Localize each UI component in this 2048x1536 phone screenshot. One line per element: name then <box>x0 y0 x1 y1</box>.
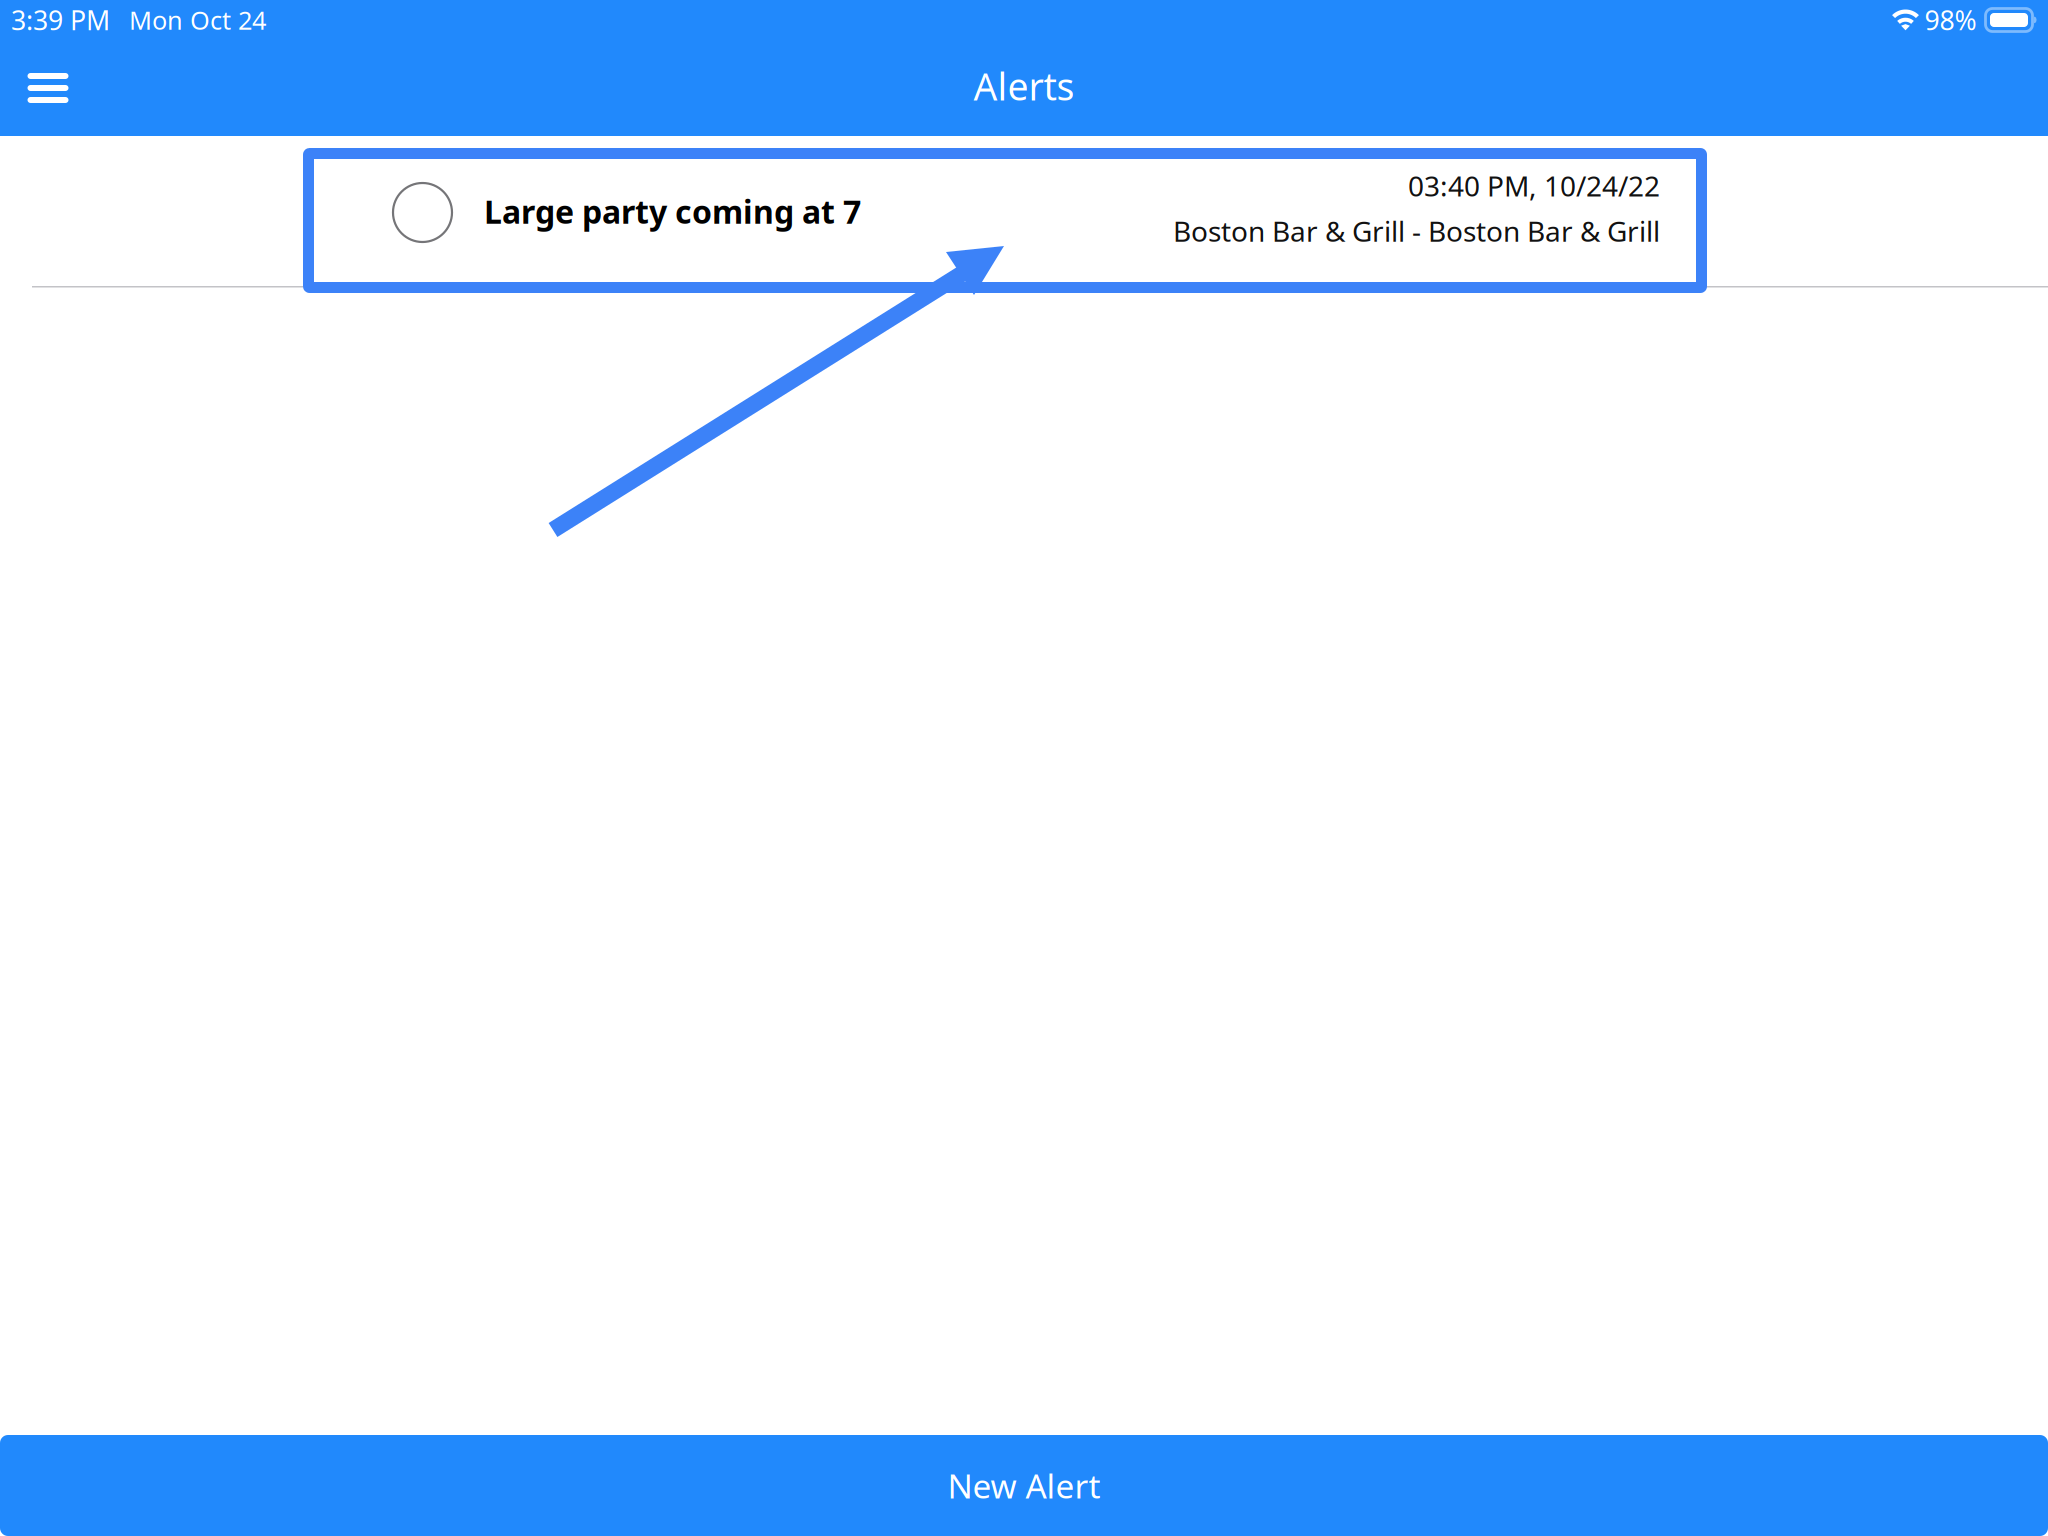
staticText: 03:40 PM, 10/24/22 <box>1408 167 1660 204</box>
button[interactable]: Large party coming at 7 <box>0 136 2048 286</box>
staticText: Large party coming at 7 <box>484 190 861 232</box>
staticText: Alerts <box>973 61 1074 111</box>
button[interactable]: Menu <box>10 45 86 131</box>
staticText: Boston Bar & Grill - Boston Bar & Grill <box>1173 212 1660 249</box>
staticText: Mon Oct 24 <box>129 3 266 37</box>
staticText: 98% <box>1924 2 1976 38</box>
staticText: 3:39 PM <box>11 2 110 38</box>
button[interactable]: New Alert <box>0 1435 2048 1536</box>
staticText: New Alert <box>947 1463 1100 1508</box>
